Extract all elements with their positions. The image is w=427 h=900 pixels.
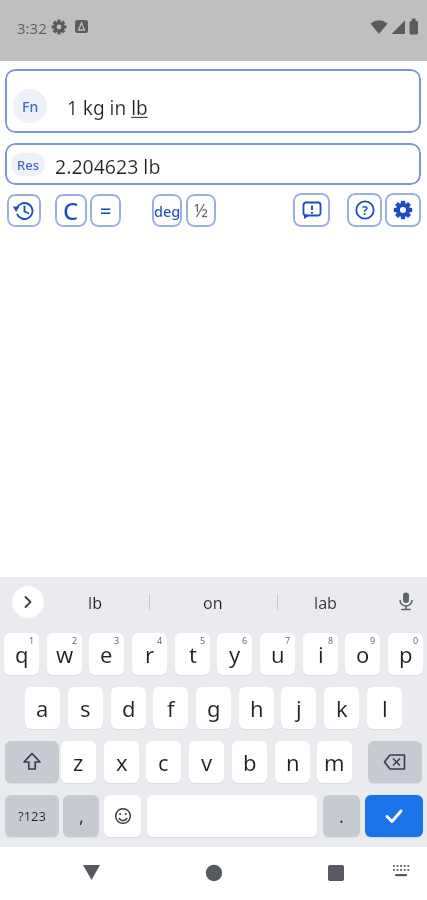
staticText: y	[229, 639, 241, 669]
staticText: w	[56, 639, 74, 669]
staticText: q	[15, 639, 29, 669]
staticText: Fn	[22, 97, 39, 116]
staticText: 0	[413, 634, 419, 646]
staticText: C	[63, 194, 79, 227]
staticText: 8	[328, 634, 334, 646]
staticText: deg	[154, 201, 181, 221]
staticText: a	[36, 693, 49, 723]
staticText: i	[318, 639, 324, 669]
staticText: h	[250, 693, 264, 723]
staticText: 4	[157, 634, 163, 646]
staticText: n	[286, 747, 300, 777]
staticText: 9	[370, 634, 376, 646]
staticText: t	[189, 639, 197, 669]
staticText: f	[167, 693, 175, 723]
staticText: =	[100, 197, 112, 224]
staticText: .	[339, 804, 344, 829]
staticText: j	[296, 693, 302, 723]
staticText: 2	[72, 634, 78, 646]
staticText: x	[116, 747, 128, 777]
staticText: s	[80, 693, 91, 723]
staticText: r	[145, 639, 155, 669]
staticText: 3	[114, 634, 120, 646]
staticText: lab	[314, 592, 337, 612]
staticText: g	[207, 693, 221, 723]
staticText: u	[271, 639, 285, 669]
staticText: c	[158, 747, 169, 777]
staticText: z	[73, 747, 84, 777]
staticText: o	[356, 639, 370, 669]
staticText: 2.204623 lb	[55, 153, 161, 180]
staticText: 6	[242, 634, 248, 646]
staticText: 7	[285, 634, 291, 646]
staticText: lb	[88, 592, 102, 612]
staticText: ,	[79, 804, 84, 829]
staticText: d	[122, 693, 136, 723]
staticText: ½	[194, 198, 208, 223]
staticText: ?	[362, 202, 368, 219]
staticText: v	[201, 747, 213, 777]
staticText: ?123	[18, 807, 46, 825]
staticText: 5	[200, 634, 206, 646]
staticText: b	[243, 747, 257, 777]
staticText: m	[324, 747, 345, 777]
staticText: l	[382, 693, 388, 723]
staticText: k	[336, 693, 348, 723]
staticText: e	[100, 639, 113, 669]
staticText: Res	[17, 156, 39, 174]
staticText: 1	[29, 634, 35, 646]
staticText: p	[399, 639, 413, 669]
staticText: on	[203, 592, 223, 612]
staticText: 1 kg in lb	[67, 95, 148, 121]
staticText: 3:32	[17, 18, 47, 36]
